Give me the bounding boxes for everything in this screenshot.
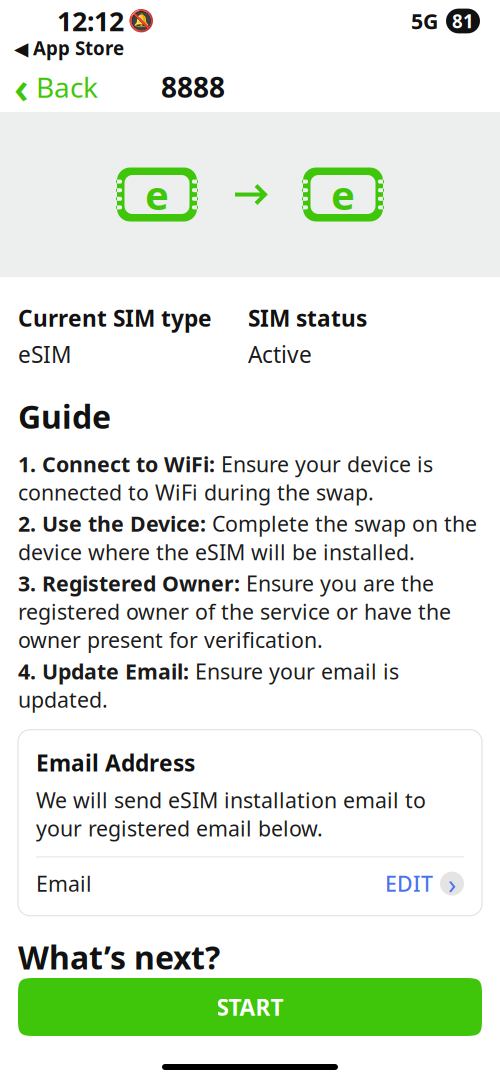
button[interactable]: START <box>18 978 482 1036</box>
staticText: ◀ App Store <box>14 36 124 60</box>
staticText: We will send eSIM installation email to … <box>36 786 426 842</box>
button[interactable]: EDIT <box>385 869 464 898</box>
staticText: EDIT <box>385 869 433 898</box>
staticText: › <box>448 866 456 901</box>
staticText: 2. Use the Device: Complete the swap on … <box>18 509 477 566</box>
staticText: 3. Registered Owner: Ensure you are the … <box>18 569 451 654</box>
staticText: eSIM <box>18 339 72 369</box>
staticText: START <box>216 992 283 1022</box>
staticText: 🔕 <box>128 9 155 33</box>
staticText: What’s next? <box>18 936 220 978</box>
staticText: 8888 <box>161 68 225 106</box>
staticText: SIM status <box>248 303 367 333</box>
staticText: Guide <box>18 395 111 438</box>
staticText: 1. Connect to WiFi: Ensure your device i… <box>18 450 433 506</box>
staticText: A TAC code will be sent via SMS to your … <box>116 1039 431 1084</box>
staticText: ● <box>78 1007 101 1037</box>
staticText: TAC verification <box>116 1008 283 1037</box>
staticText: 5G <box>411 7 438 35</box>
button[interactable]: ‹ <box>0 63 112 111</box>
staticText: 1 <box>43 1007 56 1037</box>
staticText: ‹ <box>14 59 29 115</box>
staticText: Email Address <box>36 748 195 778</box>
staticText: e <box>331 168 355 221</box>
staticText: e <box>145 168 169 221</box>
staticText: Back <box>36 68 98 106</box>
staticText: Active <box>248 339 312 369</box>
staticText: Email <box>36 869 92 898</box>
staticText: 4. Update Email: Ensure your email is up… <box>18 657 399 714</box>
staticText: 12:12 <box>57 3 124 39</box>
staticText: Current SIM type <box>18 303 212 333</box>
staticText: 81 <box>452 9 474 33</box>
